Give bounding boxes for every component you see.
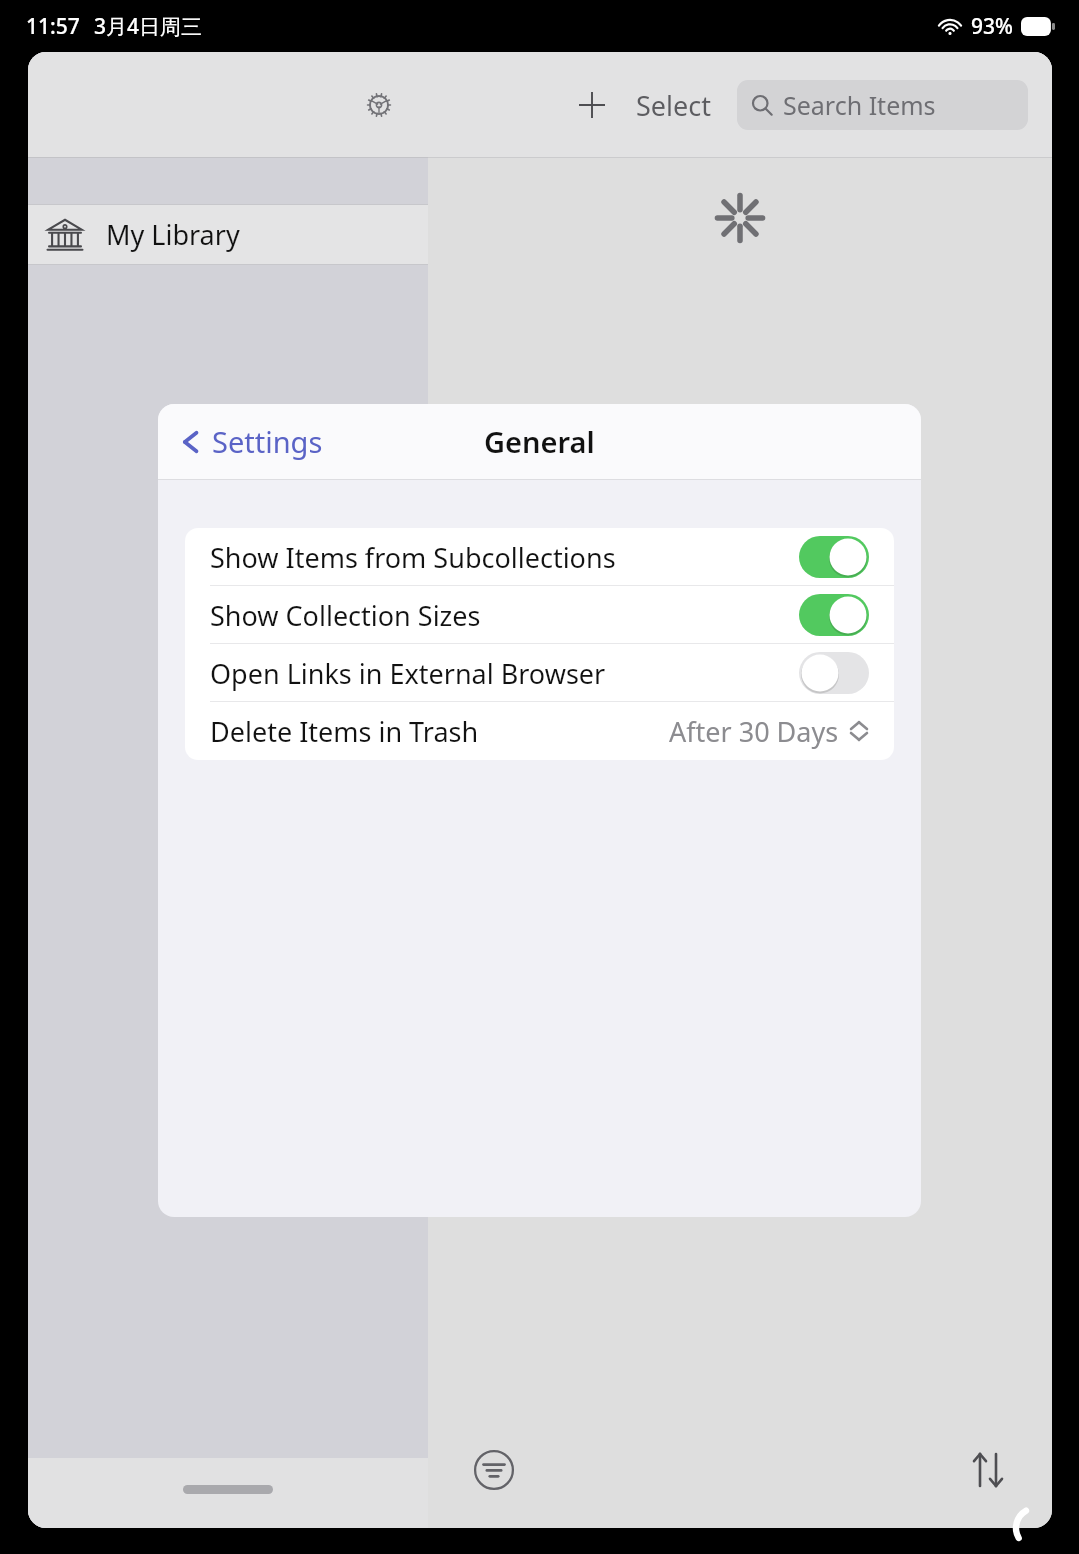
staticText: Delete Items in Trash	[210, 713, 479, 750]
button[interactable]: Settings	[352, 78, 406, 132]
staticText: Show Items from Subcollections	[210, 539, 616, 576]
staticText: Select	[636, 87, 711, 124]
button[interactable]: My Library	[28, 205, 428, 264]
button[interactable]: Sort	[960, 1442, 1016, 1498]
staticText: My Library	[106, 216, 240, 253]
button[interactable]: Filter	[466, 1442, 522, 1498]
staticText: After 30 Days	[669, 713, 839, 750]
button[interactable]	[799, 536, 869, 578]
button[interactable]	[799, 594, 869, 636]
button[interactable]: Delete Items in Trash	[185, 702, 894, 760]
button[interactable]: Add	[568, 81, 616, 129]
staticText: General	[484, 422, 595, 461]
button[interactable]: Open Links in External Browser	[185, 644, 894, 702]
staticText: Search Items	[783, 88, 936, 122]
button[interactable]: Show Collection Sizes	[185, 586, 894, 644]
button[interactable]: Show Items from Subcollections	[185, 528, 894, 586]
staticText: 11:57	[26, 12, 80, 41]
staticText: Open Links in External Browser	[210, 655, 606, 692]
button[interactable]: Settings	[172, 414, 331, 469]
staticText: 93%	[971, 12, 1013, 41]
staticText: Show Collection Sizes	[210, 597, 481, 634]
staticText: 3月4日周三	[94, 12, 203, 41]
staticText: Settings	[212, 422, 323, 461]
button[interactable]	[799, 652, 869, 694]
button[interactable]: Select	[628, 81, 719, 130]
button[interactable]: Search Items	[737, 80, 1028, 130]
